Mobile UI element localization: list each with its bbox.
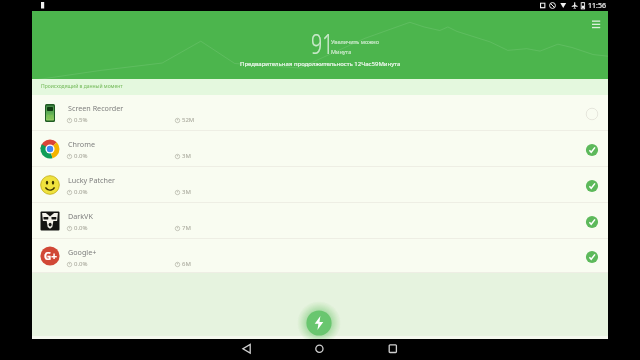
staticText: 91 bbox=[311, 24, 333, 62]
staticText: 3M bbox=[182, 188, 191, 196]
staticText: Предварительная продолжительность 12Час5… bbox=[240, 60, 401, 68]
button[interactable]: Screen Recorder bbox=[32, 95, 608, 131]
other: Navigation bar bbox=[0, 339, 640, 360]
button[interactable]: Lucky Patcher bbox=[32, 167, 608, 203]
staticText: Увеличить можно bbox=[331, 38, 379, 45]
button[interactable]: Selected bbox=[585, 250, 599, 264]
staticText: 6M bbox=[182, 260, 191, 268]
staticText: 0.0% bbox=[74, 188, 88, 196]
staticText: 0.0% bbox=[74, 224, 88, 232]
staticText: Chrome bbox=[68, 139, 95, 149]
staticText: 52M bbox=[182, 116, 195, 124]
staticText: G+ bbox=[44, 249, 57, 263]
staticText: 11:56 bbox=[588, 1, 606, 11]
staticText: 0.5% bbox=[74, 116, 88, 124]
staticText: Google+ bbox=[68, 247, 97, 257]
button[interactable]: Selected bbox=[585, 179, 599, 193]
button[interactable]: G+ bbox=[32, 239, 608, 273]
button[interactable]: Selected bbox=[585, 215, 599, 229]
staticText: Lucky Patcher bbox=[68, 175, 115, 185]
staticText: 7M bbox=[182, 224, 191, 232]
staticText: 0.0% bbox=[74, 152, 88, 160]
staticText: Screen Recorder bbox=[68, 103, 124, 113]
button[interactable]: DarkVK bbox=[32, 203, 608, 239]
button[interactable]: Boost bbox=[297, 301, 341, 345]
staticText: DarkVK bbox=[68, 211, 93, 221]
button[interactable]: Not selected bbox=[585, 107, 599, 121]
button[interactable]: Selected bbox=[585, 143, 599, 157]
button[interactable]: Menu bbox=[588, 16, 604, 32]
staticText: Происходящий в данный момент bbox=[41, 83, 123, 90]
staticText: 3M bbox=[182, 152, 191, 160]
button[interactable]: Chrome bbox=[32, 131, 608, 167]
staticText: 0.0% bbox=[74, 260, 88, 268]
staticText: Минута bbox=[331, 48, 352, 55]
